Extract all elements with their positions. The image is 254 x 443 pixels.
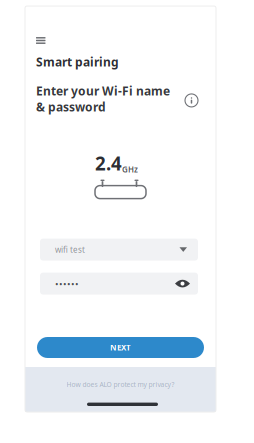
button[interactable]: NEXT bbox=[37, 337, 204, 358]
button[interactable]: Information bbox=[185, 94, 198, 107]
staticText: & password bbox=[36, 99, 106, 115]
button[interactable]: How does ALO protect my privacy? bbox=[66, 380, 174, 389]
staticText: GHz bbox=[122, 164, 138, 175]
staticText: Smart pairing bbox=[36, 54, 119, 70]
button[interactable]: •••••• bbox=[40, 273, 198, 295]
button[interactable]: wifi test bbox=[40, 239, 198, 261]
staticText: NEXT bbox=[110, 342, 131, 353]
staticText: How does ALO protect my privacy? bbox=[66, 380, 174, 389]
staticText: wifi test bbox=[55, 244, 85, 255]
staticText: •••••• bbox=[55, 277, 79, 290]
button[interactable]: Menu bbox=[36, 37, 45, 44]
staticText: 2.4 bbox=[95, 151, 122, 176]
staticText: Enter your Wi-Fi name bbox=[36, 83, 170, 99]
